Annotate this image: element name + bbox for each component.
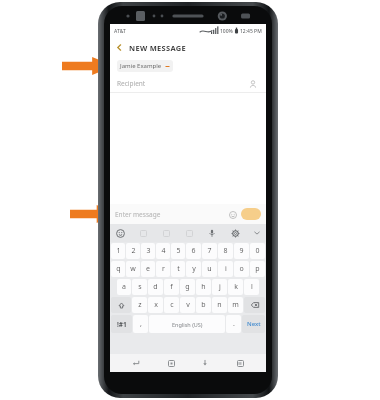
staticText: 7 — [207, 246, 212, 256]
staticText: w — [130, 264, 136, 274]
staticText: a — [122, 282, 126, 292]
staticText: m — [232, 300, 239, 310]
staticText: 8 — [223, 246, 228, 256]
button[interactable]: t — [171, 261, 185, 277]
staticText: p — [255, 264, 260, 274]
button[interactable]: 2 — [126, 243, 140, 259]
button[interactable]: b — [196, 297, 211, 313]
staticText: e — [146, 264, 150, 274]
button[interactable]: Back — [110, 38, 129, 57]
staticText: 3 — [146, 246, 151, 256]
button[interactable]: x — [148, 297, 163, 313]
button[interactable]: sticker — [160, 227, 172, 239]
staticText: 100% — [220, 28, 233, 35]
button[interactable]: Add recipient from contacts — [247, 78, 259, 90]
staticText: t — [177, 264, 180, 274]
staticText: l — [251, 282, 253, 292]
button[interactable]: n — [212, 297, 227, 313]
button[interactable]: u — [202, 261, 217, 277]
button[interactable]: h — [196, 279, 211, 295]
staticText: 12:45 PM — [240, 28, 262, 35]
button[interactable]: 0 — [250, 243, 265, 259]
staticText: 4 — [161, 246, 166, 256]
staticText: c — [170, 300, 174, 310]
button[interactable]: 5 — [171, 243, 185, 259]
button[interactable]: c — [164, 297, 179, 313]
button[interactable]: 6 — [186, 243, 201, 259]
button[interactable]: Keyboard settings — [229, 227, 241, 239]
button[interactable]: z — [132, 297, 147, 313]
button[interactable]: gif — [183, 227, 195, 239]
button[interactable]: j — [212, 279, 227, 295]
button[interactable]: . — [226, 315, 241, 333]
staticText: v — [186, 300, 190, 310]
button[interactable]: Voice input — [206, 227, 218, 239]
staticText: q — [116, 264, 121, 274]
staticText: x — [154, 300, 158, 310]
staticText: 1 — [116, 246, 121, 256]
button[interactable]: d — [148, 279, 163, 295]
staticText: !#1 — [117, 320, 127, 329]
button[interactable]: l — [244, 279, 259, 295]
button[interactable]: p — [250, 261, 265, 277]
button[interactable]: e — [141, 261, 155, 277]
staticText: Next — [247, 320, 261, 328]
button[interactable]: 9 — [234, 243, 249, 259]
button[interactable]: s — [132, 279, 147, 295]
staticText: . — [233, 319, 235, 329]
staticText: y — [192, 264, 196, 274]
button[interactable]: 8 — [218, 243, 233, 259]
button[interactable]: Download — [197, 355, 213, 371]
staticText: 5 — [176, 246, 181, 256]
staticText: b — [201, 300, 206, 310]
staticText: 9 — [239, 246, 244, 256]
staticText: j — [219, 282, 221, 292]
button[interactable]: Home — [163, 355, 179, 371]
staticText: English (US) — [172, 321, 203, 328]
button[interactable]: k — [228, 279, 243, 295]
button[interactable]: !#1 — [111, 315, 132, 333]
staticText: u — [207, 264, 212, 274]
staticText: r — [162, 264, 165, 274]
staticText: n — [217, 300, 222, 310]
button[interactable]: y — [186, 261, 201, 277]
staticText: f — [170, 282, 173, 292]
button[interactable]: Shift — [111, 297, 131, 313]
button[interactable]: Recent apps — [232, 355, 248, 371]
button[interactable]: m — [228, 297, 243, 313]
button[interactable]: v — [180, 297, 195, 313]
button[interactable]: a — [117, 279, 131, 295]
staticText: o — [239, 264, 244, 274]
button[interactable]: English (US) — [149, 315, 225, 333]
button[interactable]: q — [111, 261, 125, 277]
button[interactable]: 4 — [156, 243, 170, 259]
button[interactable]: clipboard — [137, 227, 149, 239]
staticText: k — [234, 282, 238, 292]
button[interactable]: f — [164, 279, 179, 295]
button[interactable]: o — [234, 261, 249, 277]
staticText: g — [185, 282, 190, 292]
button[interactable]: More options — [252, 228, 262, 238]
button[interactable]: , — [133, 315, 148, 333]
button[interactable]: Next — [242, 315, 265, 333]
button[interactable]: g — [180, 279, 195, 295]
button[interactable]: Backspace — [244, 297, 265, 313]
staticText: 0 — [255, 246, 260, 256]
button[interactable]: Send — [241, 208, 261, 220]
button[interactable]: Emoji — [114, 227, 126, 239]
button[interactable]: Jamie Example — [117, 60, 173, 72]
button[interactable]: 7 — [202, 243, 217, 259]
button[interactable]: 3 — [141, 243, 155, 259]
button[interactable]: r — [156, 261, 170, 277]
button[interactable]: w — [126, 261, 140, 277]
staticText: h — [201, 282, 206, 292]
staticText: , — [140, 319, 142, 329]
staticText: Jamie Example — [120, 62, 162, 70]
staticText: Recipient — [117, 79, 146, 88]
button[interactable]: Insert emoji — [227, 209, 238, 220]
button[interactable]: Back — [128, 355, 144, 371]
button[interactable]: 1 — [111, 243, 125, 259]
staticText: i — [225, 264, 227, 274]
staticText: 2 — [131, 246, 136, 256]
button[interactable]: i — [218, 261, 233, 277]
